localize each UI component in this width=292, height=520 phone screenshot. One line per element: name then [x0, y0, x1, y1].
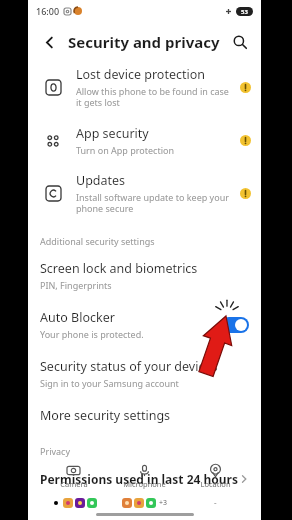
button[interactable]: Permissions used in last 24 hours — [28, 461, 261, 497]
staticText: Camera — [60, 479, 88, 489]
staticText: Privacy — [40, 445, 71, 457]
button[interactable]: Security status of your devices — [28, 349, 261, 398]
staticText: Screen lock and biometrics — [40, 260, 198, 277]
staticText: 53 — [241, 8, 248, 16]
staticText: Security status of your devices — [40, 358, 218, 375]
staticText: Auto Blocker — [40, 309, 115, 326]
staticText: Your phone is protected. — [40, 328, 144, 340]
staticText: PIN, Fingerprints — [40, 279, 112, 291]
button[interactable]: Location — [180, 462, 251, 491]
staticText: Allow this phone to be found in case it … — [76, 85, 234, 109]
button[interactable]: Lost device protection — [28, 66, 261, 117]
button[interactable]: App security — [28, 117, 261, 164]
staticText: Turn on App protection — [76, 144, 174, 156]
button[interactable]: Auto Blocker toggle — [221, 317, 249, 333]
staticText: Install software update to keep your pho… — [76, 191, 234, 215]
button[interactable]: Search — [227, 29, 253, 55]
staticText: Security and privacy — [68, 32, 220, 52]
staticText: Sign in to your Samsung account — [40, 377, 179, 389]
staticText: - — [214, 497, 217, 508]
button[interactable]: Screen lock and biometrics — [28, 251, 261, 300]
staticText: Location — [200, 479, 231, 489]
staticText: 16:00 — [36, 5, 60, 17]
staticText: More security settings — [40, 407, 171, 424]
staticText: Lost device protection — [76, 66, 205, 83]
button[interactable]: More security settings — [28, 398, 261, 433]
staticText: App security — [76, 125, 149, 142]
button[interactable]: Camera — [38, 462, 109, 491]
button[interactable]: Auto Blocker — [28, 300, 261, 349]
staticText: Permissions used in last 24 hours — [40, 471, 239, 487]
staticText: Updates — [76, 172, 126, 189]
staticText: Microphone — [123, 479, 166, 489]
button[interactable]: Updates — [28, 164, 261, 223]
staticText: Additional security settings — [40, 235, 155, 247]
staticText: +3 — [159, 498, 168, 508]
button[interactable]: Back — [36, 29, 62, 55]
button[interactable]: Microphone — [109, 462, 180, 491]
